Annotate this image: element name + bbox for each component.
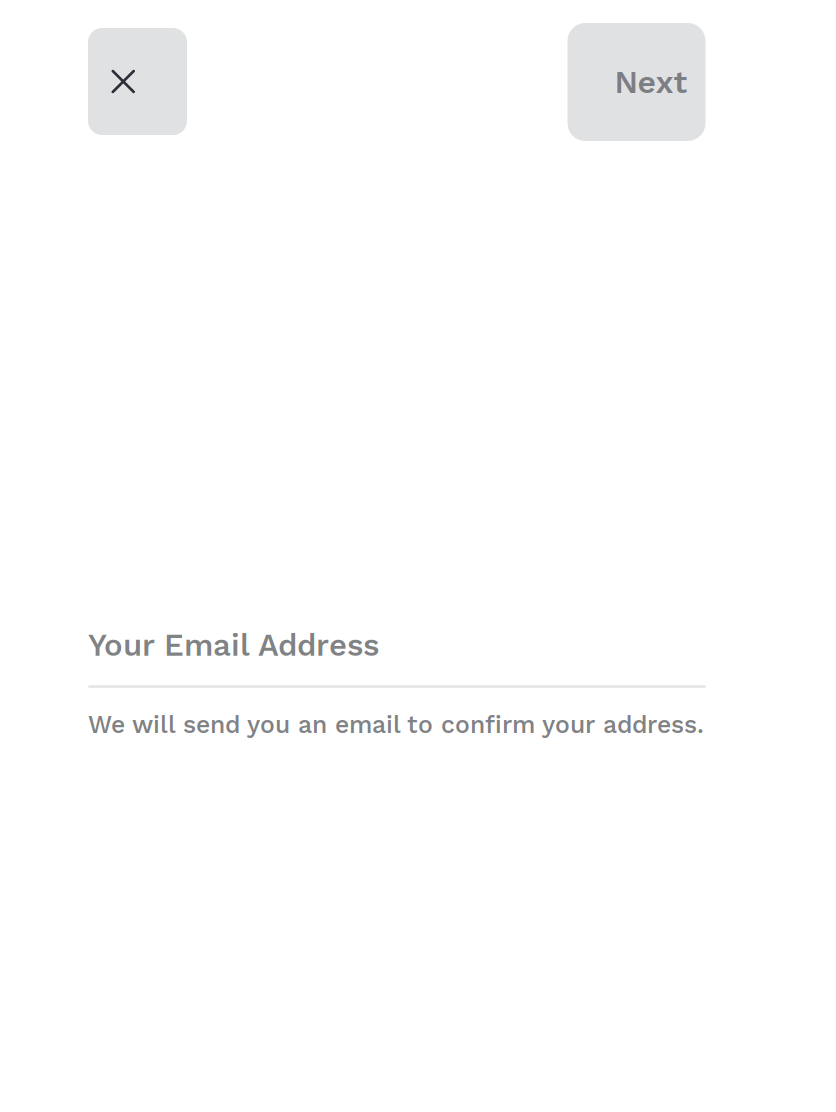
staticText: We will send you an email to confirm you…: [88, 710, 704, 739]
staticText: Your Email Address: [88, 627, 379, 663]
button[interactable]: Close: [88, 28, 187, 135]
staticText: Next: [614, 63, 687, 101]
button[interactable]: Next: [567, 23, 705, 141]
